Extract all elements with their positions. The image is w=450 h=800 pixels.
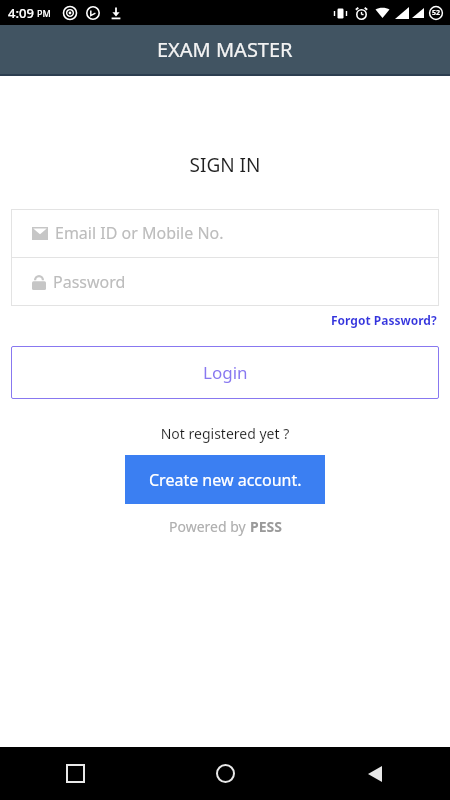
staticText: Create new account.: [149, 469, 302, 491]
button[interactable]: Email ID or Mobile No.: [11, 209, 439, 257]
staticText: Email ID or Mobile No.: [55, 222, 224, 244]
button[interactable]: Recent apps: [0, 747, 150, 800]
staticText: Powered by: [169, 517, 250, 536]
staticText: Not registered yet ?: [0, 424, 450, 443]
staticText: Forgot Password?: [331, 312, 437, 328]
staticText: PESS: [250, 517, 282, 536]
staticText: PM: [37, 7, 51, 19]
staticText: Login: [203, 361, 248, 384]
staticText: Password: [53, 271, 126, 293]
button[interactable]: Home: [150, 747, 300, 800]
button[interactable]: Login: [11, 346, 439, 399]
button[interactable]: Back: [300, 747, 450, 800]
staticText: 52: [432, 8, 441, 18]
button[interactable]: Password: [11, 258, 439, 306]
staticText: 4:09: [8, 4, 34, 22]
button[interactable]: Create new account.: [125, 455, 325, 504]
staticText: SIGN IN: [0, 152, 450, 178]
staticText: EXAM MASTER: [157, 36, 293, 63]
button[interactable]: Forgot Password?: [329, 310, 439, 330]
